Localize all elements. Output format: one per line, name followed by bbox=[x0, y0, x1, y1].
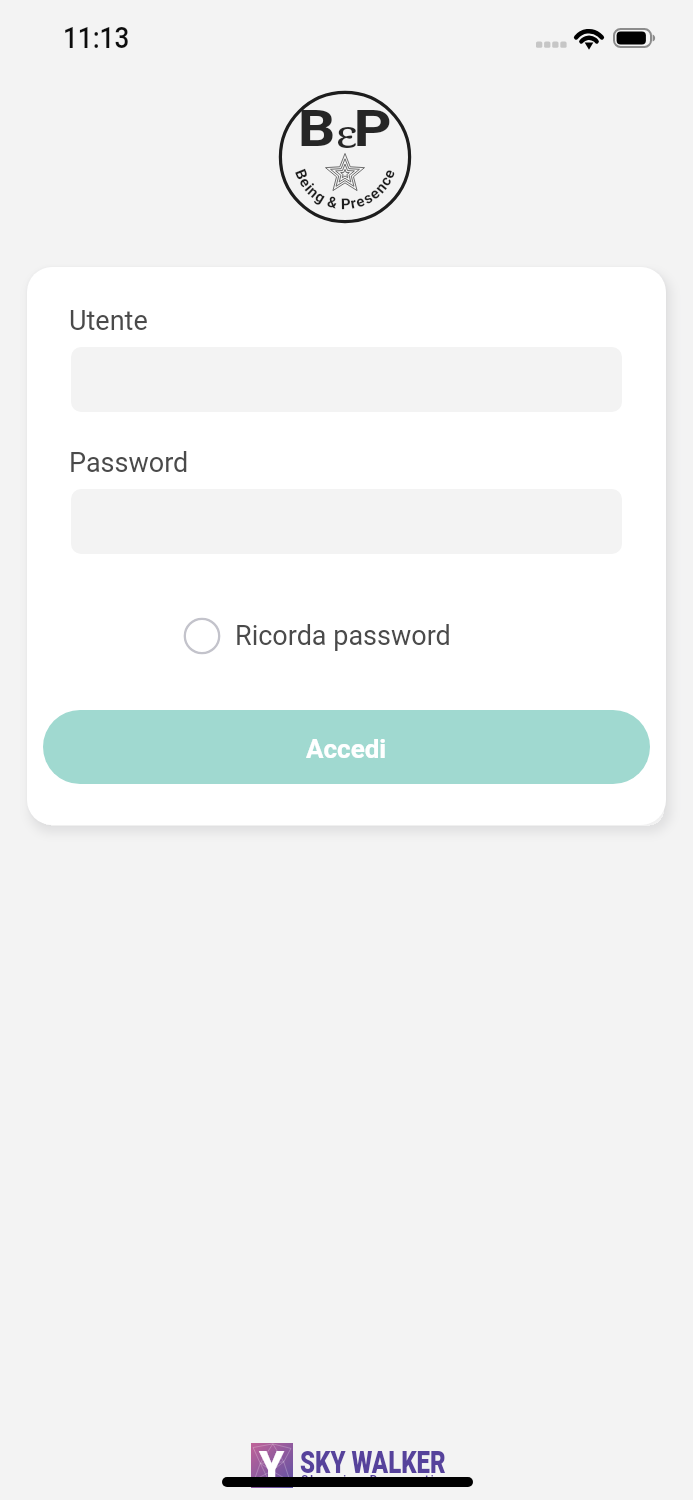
staticText: Password bbox=[69, 447, 189, 479]
staticText: Ricorda password bbox=[235, 620, 451, 652]
button[interactable]: Accedi bbox=[43, 710, 650, 784]
staticText: Utente bbox=[69, 305, 148, 337]
staticText: Accedi bbox=[306, 734, 387, 764]
other: Being & Presence logo bbox=[0, 88, 693, 228]
button[interactable]: Ricorda password bbox=[182, 616, 451, 656]
